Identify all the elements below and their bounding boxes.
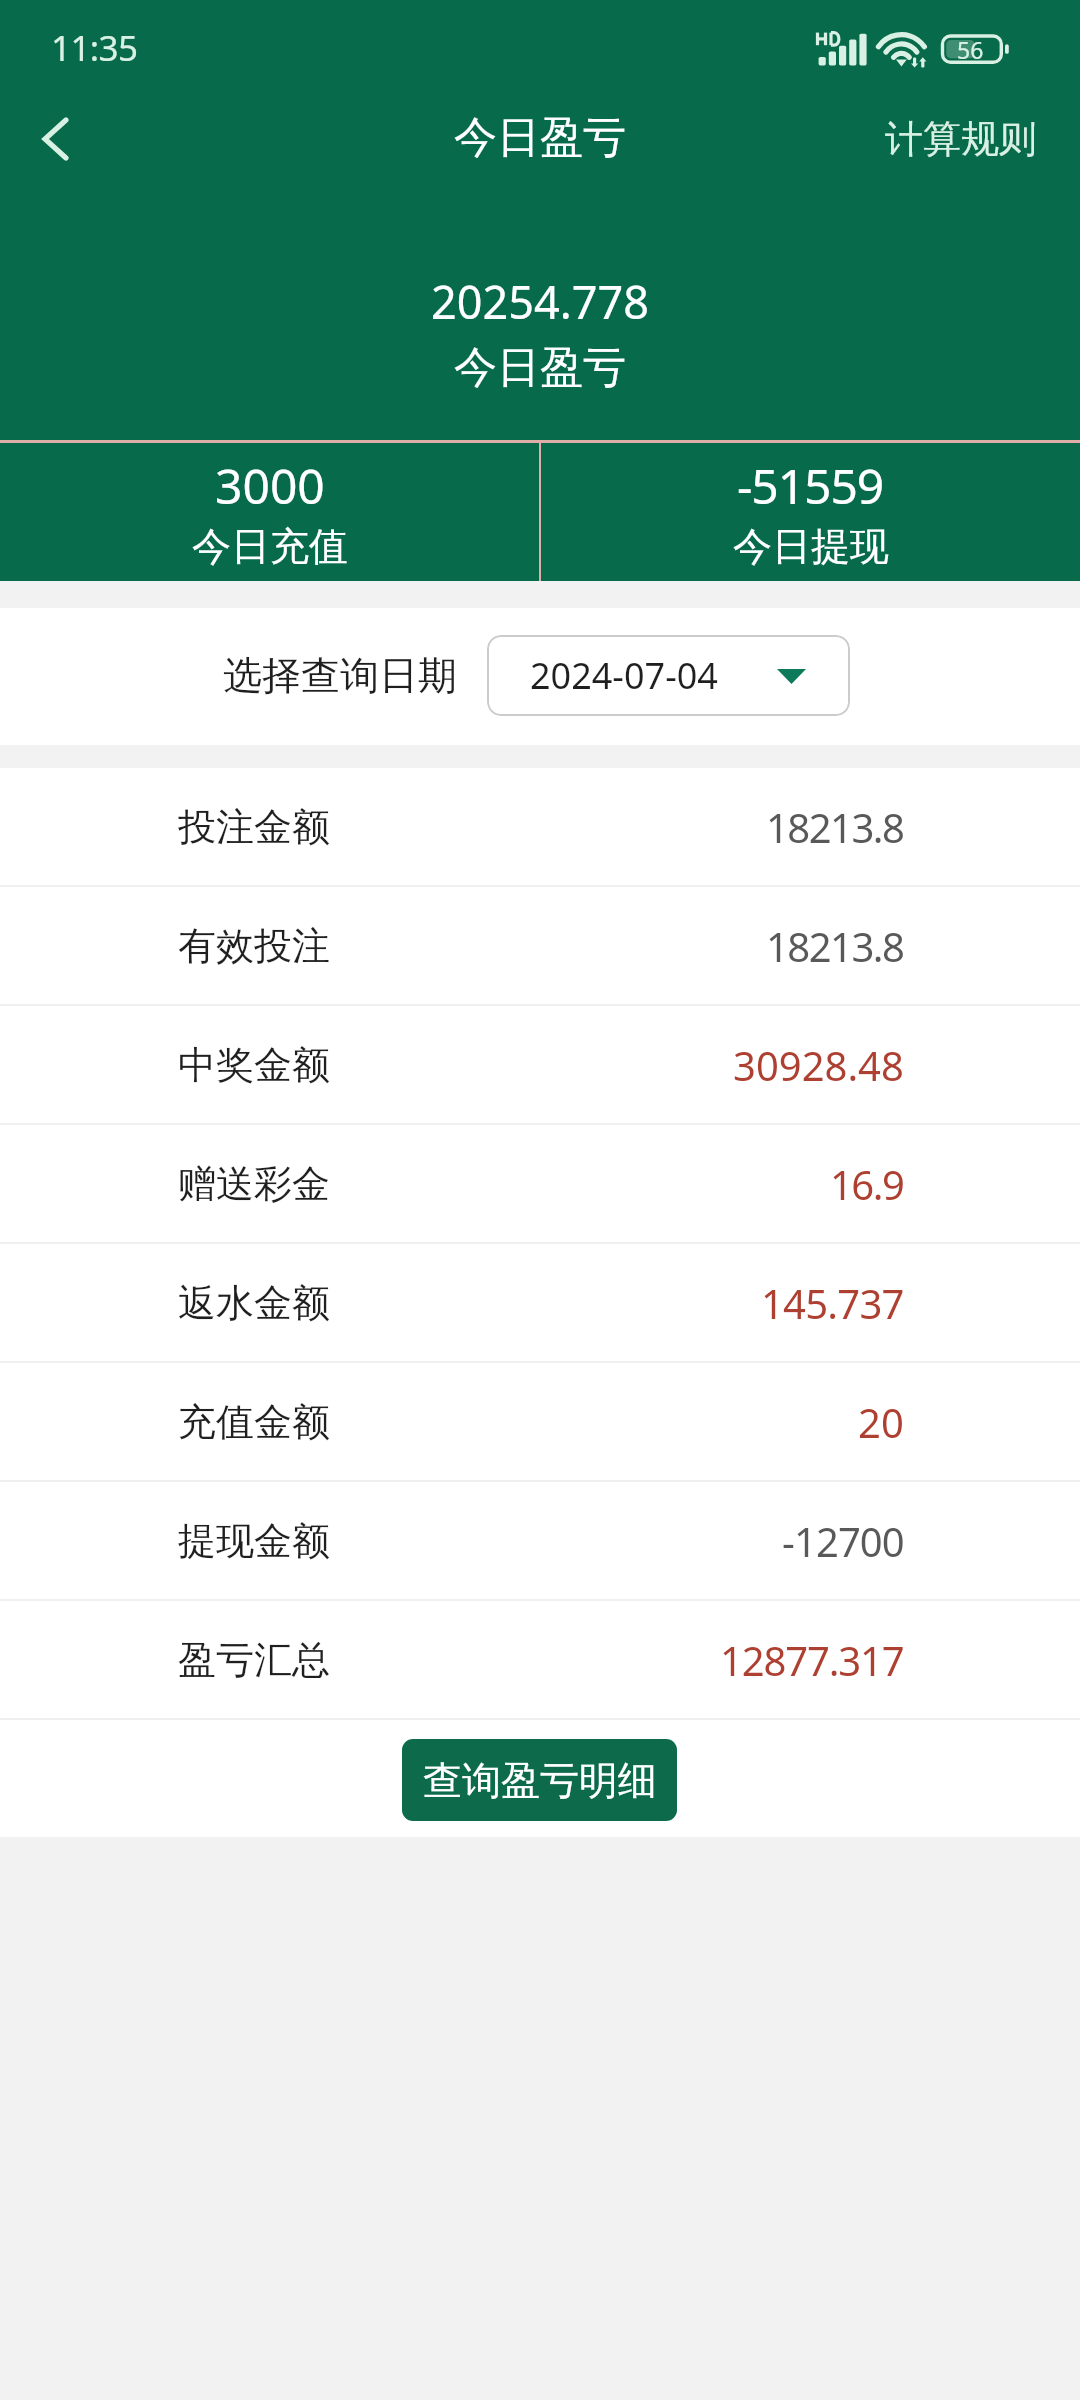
button[interactable]: 计算规则 bbox=[855, 93, 1080, 185]
staticText: 今日盈亏 bbox=[454, 341, 626, 395]
staticText: 18213.8 bbox=[766, 800, 904, 854]
staticText: 今日充值 bbox=[192, 522, 348, 571]
button[interactable]: 2024-07-04 bbox=[487, 635, 850, 716]
staticText: 今日盈亏 bbox=[454, 111, 626, 165]
button[interactable]: 中奖金额 bbox=[0, 1006, 1080, 1123]
staticText: 充值金额 bbox=[178, 1398, 330, 1446]
button[interactable]: 3000 bbox=[0, 443, 539, 581]
staticText: 12877.317 bbox=[720, 1633, 904, 1687]
staticText: 16.9 bbox=[830, 1157, 904, 1211]
staticText: 赠送彩金 bbox=[178, 1160, 330, 1208]
staticText: 今日提现 bbox=[733, 522, 889, 571]
staticText: -51559 bbox=[737, 453, 884, 518]
staticText: -12700 bbox=[782, 1514, 904, 1568]
staticText: 56 bbox=[957, 34, 984, 65]
staticText: 3000 bbox=[215, 453, 325, 518]
staticText: 盈亏汇总 bbox=[178, 1636, 330, 1684]
staticText: 中奖金额 bbox=[178, 1041, 330, 1089]
staticText: 2024-07-04 bbox=[530, 651, 718, 700]
button[interactable]: -51559 bbox=[541, 443, 1080, 581]
button[interactable]: 投注金额 bbox=[0, 768, 1080, 885]
button[interactable]: 有效投注 bbox=[0, 887, 1080, 1004]
staticText: 投注金额 bbox=[178, 803, 330, 851]
staticText: 有效投注 bbox=[178, 922, 330, 970]
staticText: 18213.8 bbox=[766, 919, 904, 973]
button[interactable]: Back bbox=[0, 88, 104, 190]
staticText: 选择查询日期 bbox=[223, 651, 457, 700]
staticText: 提现金额 bbox=[178, 1517, 330, 1565]
staticText: 返水金额 bbox=[178, 1279, 330, 1327]
staticText: 20 bbox=[858, 1395, 904, 1449]
button[interactable]: 提现金额 bbox=[0, 1482, 1080, 1599]
staticText: 145.737 bbox=[761, 1276, 904, 1330]
staticText: 30928.48 bbox=[733, 1038, 904, 1092]
button[interactable]: 盈亏汇总 bbox=[0, 1601, 1080, 1718]
button[interactable]: 查询盈亏明细 bbox=[402, 1739, 677, 1821]
staticText: 20254.778 bbox=[431, 271, 649, 332]
staticText: 11:35 bbox=[51, 24, 138, 72]
staticText: 查询盈亏明细 bbox=[423, 1756, 657, 1805]
button[interactable]: 赠送彩金 bbox=[0, 1125, 1080, 1242]
button[interactable]: 充值金额 bbox=[0, 1363, 1080, 1480]
button[interactable]: 返水金额 bbox=[0, 1244, 1080, 1361]
staticText: 计算规则 bbox=[885, 115, 1037, 163]
